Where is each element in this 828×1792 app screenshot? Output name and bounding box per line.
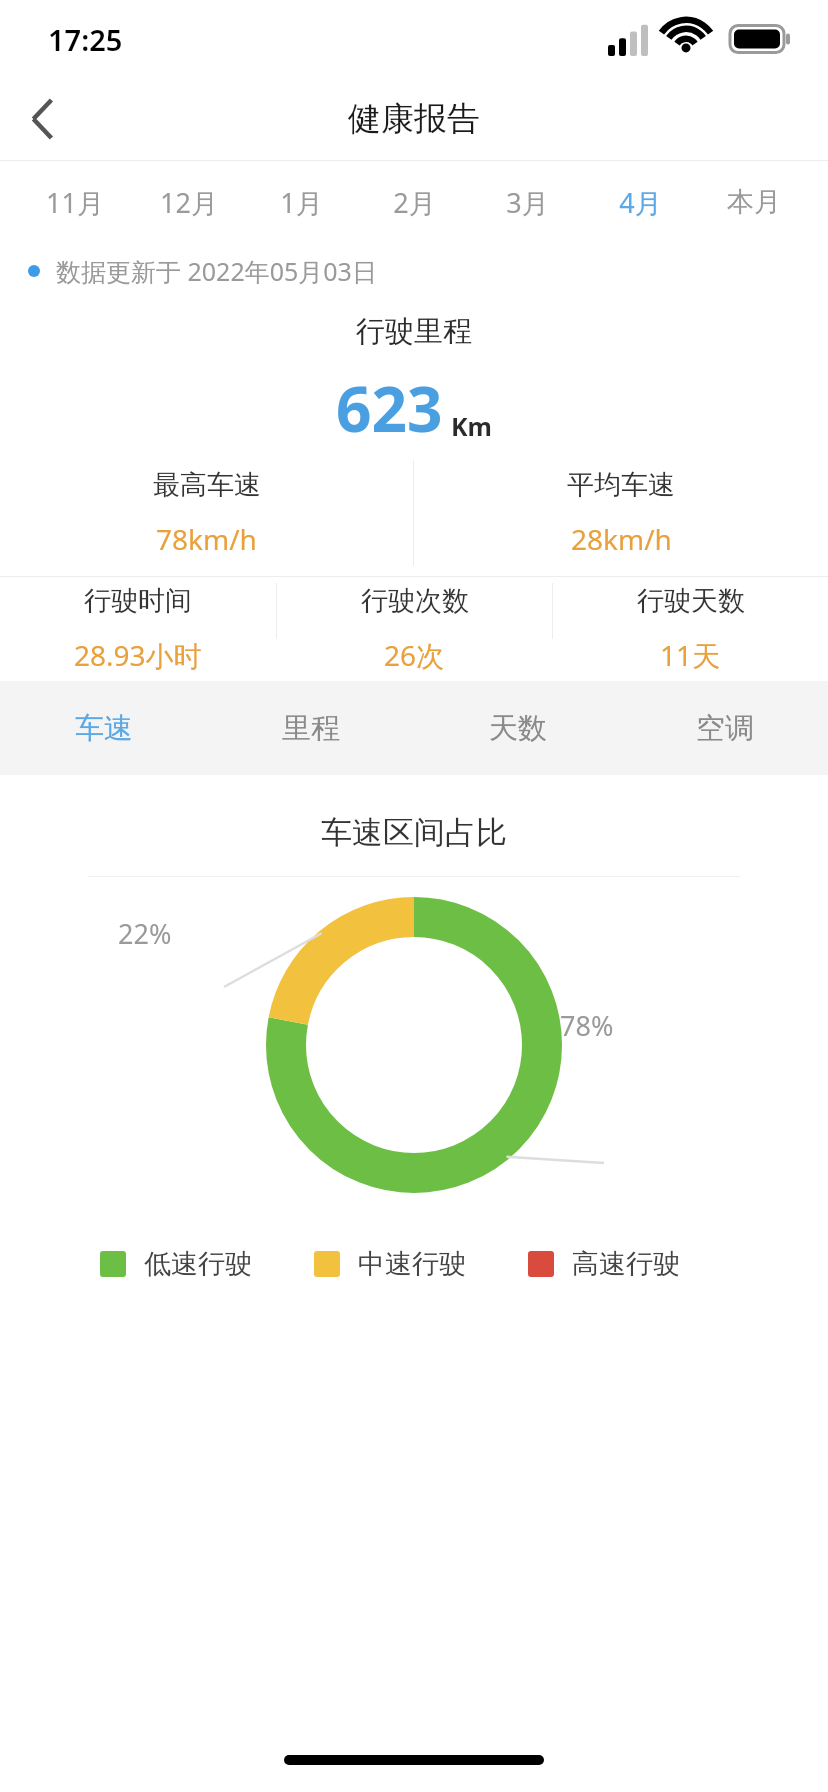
staticText: 中速行驶: [358, 1247, 466, 1281]
staticText: 平均车速: [567, 468, 675, 502]
button[interactable]: 最高车速: [0, 450, 413, 576]
staticText: 2月: [393, 184, 436, 221]
staticText: 健康报告: [348, 98, 480, 140]
staticText: 4月: [619, 184, 662, 221]
staticText: 低速行驶: [144, 1247, 252, 1281]
staticText: 1月: [280, 184, 323, 221]
staticText: 11天: [660, 636, 721, 674]
staticText: 行驶里程: [356, 313, 472, 350]
staticText: 26次: [384, 636, 445, 674]
staticText: 行驶天数: [637, 584, 745, 618]
button[interactable]: 1月: [245, 161, 358, 243]
staticText: 11月: [46, 184, 104, 221]
button[interactable]: 中速行驶: [314, 1247, 466, 1281]
button[interactable]: 3月: [471, 161, 584, 243]
staticText: 高速行驶: [572, 1247, 680, 1281]
staticText: 本月: [727, 185, 781, 219]
staticText: 数据更新于 2022年05月03日: [56, 254, 377, 288]
staticText: 28km/h: [571, 520, 672, 558]
button[interactable]: 车速: [0, 681, 207, 775]
button[interactable]: 平均车速: [414, 450, 828, 576]
staticText: 空调: [696, 710, 754, 747]
button[interactable]: 2月: [358, 161, 471, 243]
staticText: 623: [336, 366, 443, 450]
staticText: 12月: [160, 184, 218, 221]
button[interactable]: 行驶时间: [0, 577, 276, 681]
button[interactable]: Back: [0, 78, 86, 160]
staticText: 最高车速: [153, 468, 261, 502]
button[interactable]: 天数: [414, 681, 621, 775]
staticText: 车速区间占比: [321, 813, 507, 852]
staticText: 行驶时间: [84, 584, 192, 618]
staticText: 行驶次数: [361, 584, 469, 618]
button[interactable]: 行驶次数: [277, 577, 552, 681]
button[interactable]: 12月: [132, 161, 245, 243]
staticText: 78km/h: [156, 520, 257, 558]
staticText: 车速: [75, 710, 133, 747]
staticText: 里程: [282, 710, 340, 747]
staticText: 3月: [506, 184, 549, 221]
staticText: 天数: [489, 710, 547, 747]
button[interactable]: 低速行驶: [100, 1247, 252, 1281]
staticText: 78%: [560, 1007, 614, 1044]
button[interactable]: 11月: [18, 161, 132, 243]
staticText: 28.93小时: [74, 636, 202, 674]
button[interactable]: 高速行驶: [528, 1247, 680, 1281]
button[interactable]: 行驶天数: [553, 577, 828, 681]
button[interactable]: 里程: [207, 681, 414, 775]
button[interactable]: 本月: [697, 161, 810, 243]
staticText: Km: [451, 409, 492, 443]
button[interactable]: 空调: [621, 681, 828, 775]
staticText: 17:25: [48, 20, 123, 59]
staticText: 22%: [118, 915, 172, 952]
button[interactable]: 4月: [584, 161, 697, 243]
